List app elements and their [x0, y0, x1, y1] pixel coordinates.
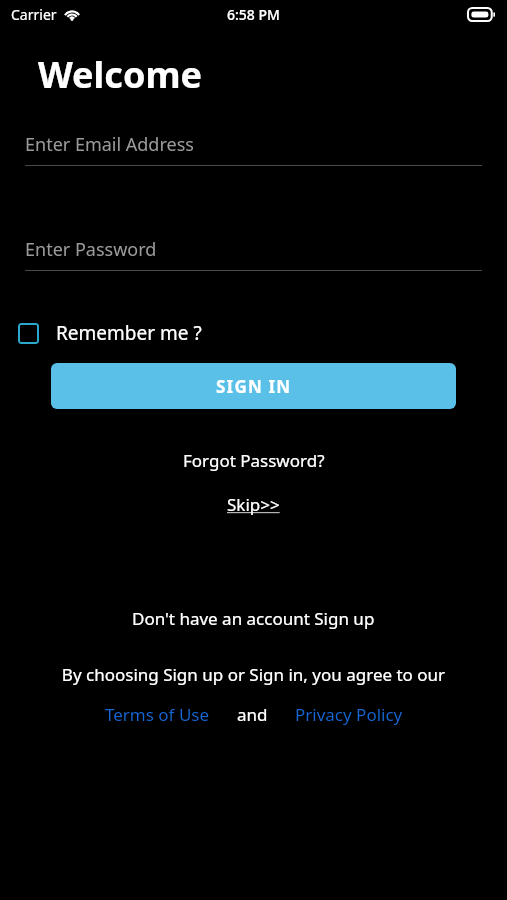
- staticText: 6:58 PM: [227, 5, 280, 24]
- button[interactable]: Skip>>: [217, 491, 290, 518]
- staticText: SIGN IN: [216, 375, 292, 398]
- staticText: Skip>>: [227, 493, 280, 516]
- other: Battery full: [468, 8, 495, 21]
- button[interactable]: Enter Password: [25, 237, 482, 271]
- button[interactable]: Terms of Use: [101, 701, 214, 728]
- button[interactable]: Forgot Password?: [173, 447, 335, 474]
- staticText: Enter Password: [25, 237, 157, 262]
- staticText: Enter Email Address: [25, 132, 194, 157]
- staticText: Don't have an account Sign up: [132, 607, 375, 630]
- staticText: By choosing Sign up or Sign in, you agre…: [0, 663, 507, 686]
- staticText: Remember me ?: [56, 320, 202, 346]
- button[interactable]: Enter Email Address: [25, 132, 482, 166]
- staticText: Privacy Policy: [295, 703, 403, 726]
- staticText: Terms of Use: [105, 703, 210, 726]
- button[interactable]: Don't have an account Sign up: [122, 605, 385, 632]
- staticText: Welcome: [38, 50, 202, 99]
- button[interactable]: Remember me ?: [18, 320, 202, 346]
- staticText: and: [237, 703, 268, 726]
- button[interactable]: SIGN IN: [51, 363, 456, 409]
- staticText: Forgot Password?: [183, 449, 325, 472]
- button[interactable]: Privacy Policy: [291, 701, 407, 728]
- staticText: Carrier: [11, 5, 57, 24]
